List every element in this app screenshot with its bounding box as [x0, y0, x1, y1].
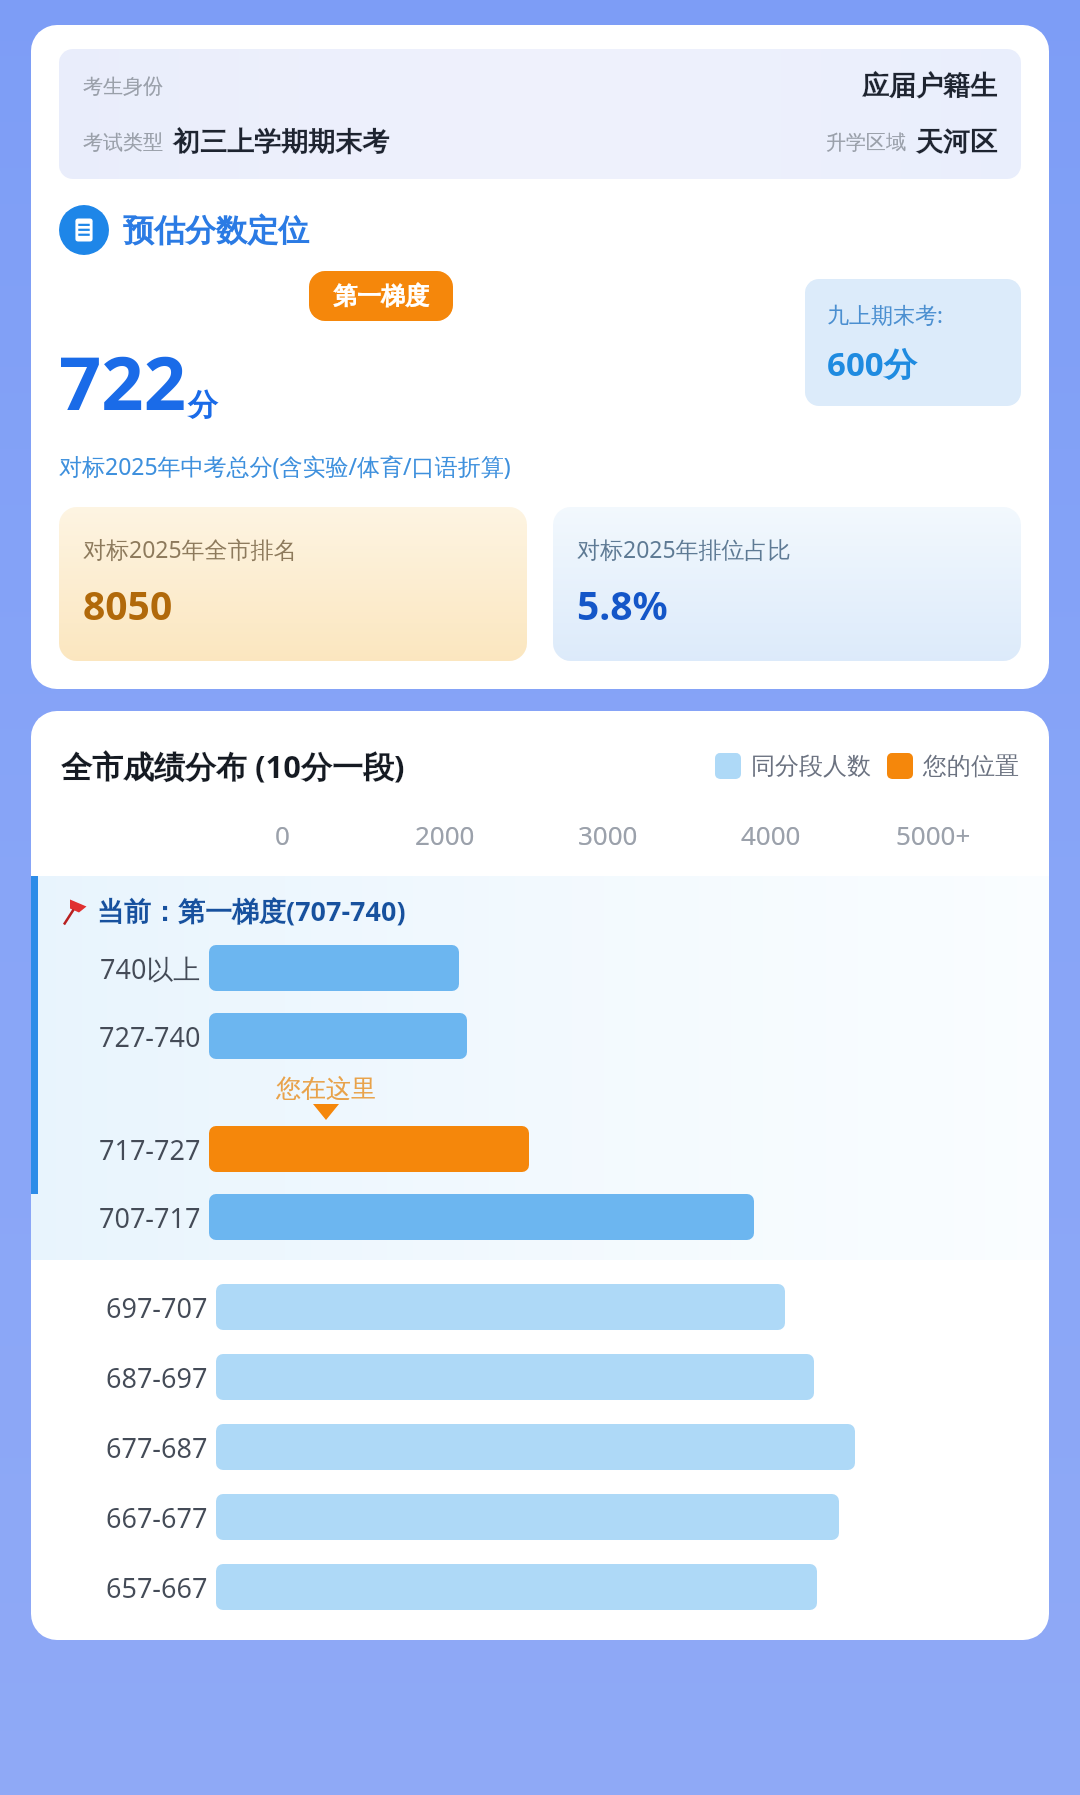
button[interactable]: 九上期末考: — [805, 279, 1021, 406]
button[interactable]: 740以上 — [61, 945, 1049, 991]
staticText: 657-667 — [106, 1569, 208, 1606]
button[interactable]: 第一梯度 — [309, 271, 453, 321]
staticText: 全市成绩分布 (10分一段) — [61, 745, 405, 787]
staticText: 722 — [59, 331, 186, 432]
staticText: 727-740 — [99, 1018, 201, 1055]
staticText: 717-727 — [99, 1131, 201, 1168]
staticText: 697-707 — [106, 1289, 208, 1326]
staticText: 应届户籍生 — [862, 69, 997, 103]
staticText: 667-677 — [106, 1499, 208, 1536]
staticText: 4000 — [741, 817, 801, 852]
staticText: 升学区域 — [826, 130, 906, 155]
staticText: 687-697 — [106, 1359, 208, 1396]
button[interactable]: 677-687 — [68, 1424, 1049, 1470]
staticText: 当前：第一梯度(707-740) — [97, 892, 406, 929]
button[interactable]: 对标2025年全市排名 — [59, 507, 527, 661]
staticText: 考试类型 — [83, 130, 163, 155]
staticText: 5.8% — [577, 578, 668, 631]
staticText: 对标2025年排位占比 — [577, 533, 791, 564]
staticText: 第一梯度 — [333, 281, 429, 311]
button[interactable]: 697-707 — [68, 1284, 1049, 1330]
button[interactable]: 707-717 — [61, 1194, 1049, 1240]
staticText: 0 — [275, 817, 290, 852]
staticText: 同分段人数 — [751, 751, 871, 781]
staticText: 677-687 — [106, 1429, 208, 1466]
staticText: 您在这里 — [276, 1073, 376, 1104]
staticText: 600分 — [827, 341, 917, 386]
staticText: 初三上学期期末考 — [173, 125, 389, 159]
staticText: 分 — [188, 386, 218, 424]
staticText: 740以上 — [100, 950, 201, 987]
staticText: 您的位置 — [923, 751, 1019, 781]
staticText: 对标2025年中考总分(含实验/体育/口语折算) — [59, 450, 511, 481]
staticText: 707-717 — [99, 1199, 201, 1236]
staticText: 2000 — [415, 817, 475, 852]
staticText: 预估分数定位 — [123, 211, 309, 250]
staticText: 考生身份 — [83, 74, 163, 99]
button[interactable]: 687-697 — [68, 1354, 1049, 1400]
staticText: 对标2025年全市排名 — [83, 533, 297, 564]
button[interactable]: 727-740 — [61, 1013, 1049, 1059]
staticText: 3000 — [578, 817, 638, 852]
button[interactable]: 657-667 — [68, 1564, 1049, 1610]
staticText: 5000+ — [896, 817, 971, 852]
staticText: 8050 — [83, 578, 173, 631]
button[interactable]: 667-677 — [68, 1494, 1049, 1540]
staticText: 九上期末考: — [827, 299, 943, 329]
button[interactable]: 考生身份 — [59, 49, 1021, 179]
button[interactable]: 对标2025年排位占比 — [553, 507, 1021, 661]
button[interactable]: 717-727 — [61, 1126, 1049, 1172]
staticText: 天河区 — [916, 125, 997, 159]
